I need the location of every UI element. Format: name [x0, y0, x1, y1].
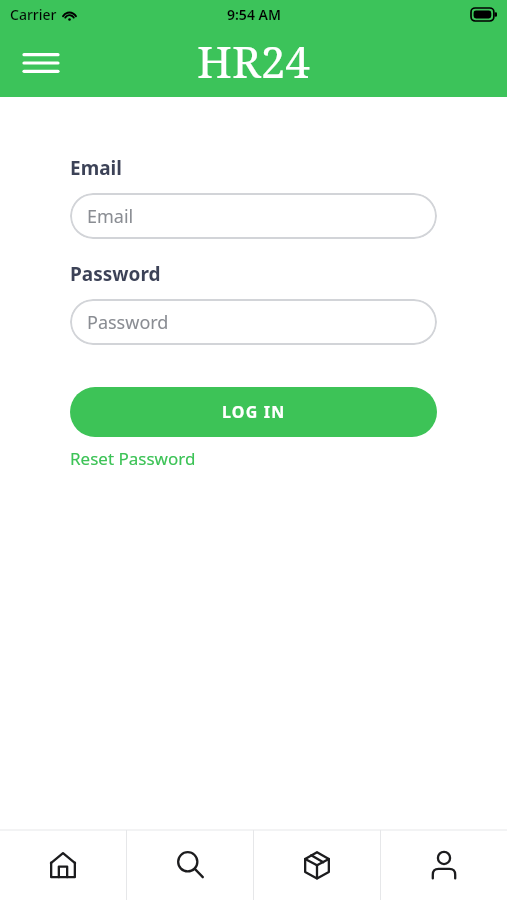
staticText: Password	[70, 261, 161, 287]
staticText: Password	[87, 310, 169, 335]
staticText: Carrier	[10, 5, 57, 24]
button[interactable]: Reset Password	[70, 447, 196, 470]
button[interactable]: Menu	[14, 36, 68, 90]
staticText: Reset Password	[70, 447, 196, 470]
staticText: LOG IN	[222, 401, 286, 423]
button[interactable]: Home	[0, 830, 126, 900]
button[interactable]: Profile	[381, 830, 507, 900]
staticText: Email	[87, 204, 134, 229]
staticText: Email	[70, 155, 122, 181]
button[interactable]: Password	[70, 299, 437, 345]
button[interactable]: LOG IN	[70, 387, 437, 437]
button[interactable]: Email	[70, 193, 437, 239]
button[interactable]: Packages	[254, 830, 380, 900]
button[interactable]: Search	[127, 830, 253, 900]
staticText: 9:54 AM	[227, 5, 281, 24]
staticText: HR24	[197, 31, 310, 91]
